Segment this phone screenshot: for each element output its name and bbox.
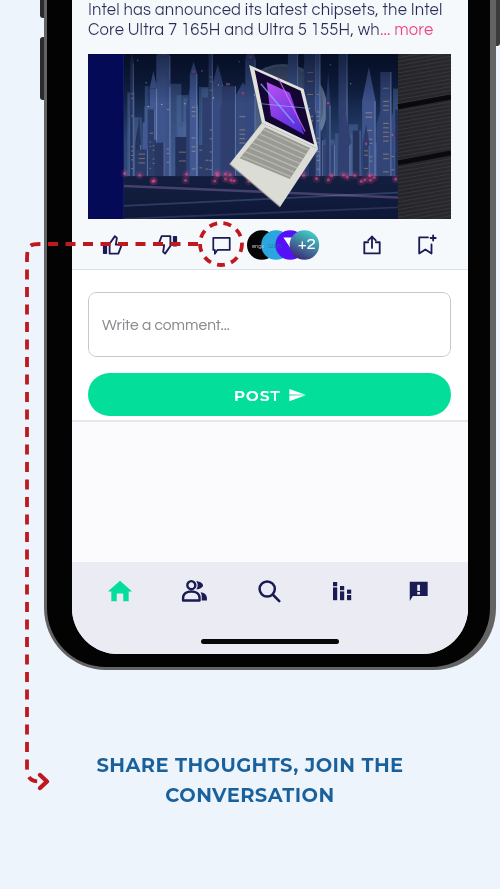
staticText: Intel has announced its latest chipsets,…: [88, 1, 443, 18]
button[interactable]: ... more: [380, 21, 434, 38]
button[interactable]: Comment: [203, 227, 239, 263]
button[interactable]: Write a comment...: [88, 292, 451, 357]
staticText: SHARE THOUGHTS, JOIN THE CONVERSATION: [96, 753, 404, 807]
staticText: Write a comment...: [102, 317, 230, 333]
staticText: engx: [252, 243, 265, 249]
button[interactable]: People: [172, 568, 218, 614]
button[interactable]: Alerts: [395, 568, 441, 614]
staticText: +2: [298, 236, 316, 252]
button[interactable]: Like: [95, 227, 131, 263]
staticText: Core Ultra 7 165H and Ultra 5 155H, wh: [88, 21, 380, 38]
staticText: POST: [234, 386, 281, 404]
button[interactable]: Share: [354, 227, 390, 263]
button[interactable]: Save: [408, 227, 444, 263]
button[interactable]: POST: [88, 373, 451, 416]
button[interactable]: Stats: [320, 568, 366, 614]
button[interactable]: Search: [246, 568, 292, 614]
staticText: GIZM: [268, 243, 281, 249]
button[interactable]: Commenters: [247, 230, 319, 260]
button[interactable]: Dislike: [149, 227, 185, 263]
button[interactable]: Home: [97, 568, 143, 614]
